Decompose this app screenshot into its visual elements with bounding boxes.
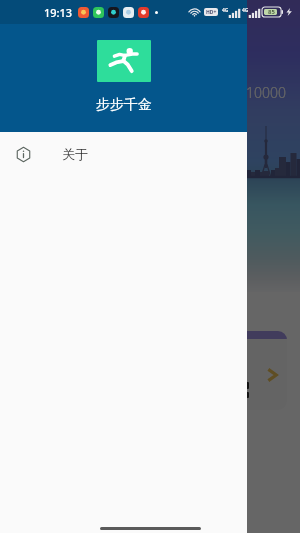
staticText: 关于	[62, 146, 88, 162]
other: About	[16, 147, 31, 162]
staticText: HD+	[206, 9, 217, 16]
staticText: 85	[268, 8, 275, 16]
staticText: 4G	[222, 7, 229, 14]
staticText: 10000	[246, 83, 286, 102]
staticText: 4G	[242, 7, 249, 14]
button[interactable]: About	[0, 132, 247, 176]
button[interactable]	[13, 331, 287, 410]
staticText: 步步千金	[96, 96, 152, 114]
staticText: 19:13	[44, 5, 73, 20]
